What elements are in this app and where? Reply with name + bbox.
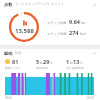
staticText: 深い睡眠時間: [66, 66, 85, 70]
staticText: ステップ消費: [47, 32, 67, 36]
staticText: 5: [36, 58, 40, 65]
staticText: 時: [70, 61, 73, 65]
staticText: 29: [43, 58, 50, 65]
staticText: 06:09: [87, 96, 94, 100]
staticText: 81: [12, 58, 19, 65]
button[interactable]: 折りたたむ: [91, 50, 97, 56]
staticText: 1: [66, 58, 70, 65]
staticText: 睡眠スコア: [5, 66, 21, 70]
staticText: もっとステップアップしましょう: [15, 2, 64, 6]
staticText: kcal: [80, 32, 86, 36]
staticText: 昨夜: [15, 51, 22, 55]
button[interactable]: 睡眠: [0, 49, 100, 100]
staticText: 歩数: [4, 2, 13, 7]
staticText: 00:40: [5, 96, 12, 100]
staticText: 9.64: [69, 18, 80, 25]
staticText: 睡眠: [4, 51, 13, 56]
staticText: 分: [50, 61, 53, 65]
staticText: km: [81, 21, 86, 25]
staticText: 13: [73, 58, 80, 65]
button[interactable]: 歩数: [0, 0, 100, 45]
staticText: 睡眠時間: [36, 66, 48, 70]
staticText: ステップ距離: [47, 21, 67, 25]
staticText: 分: [80, 61, 83, 65]
staticText: 時: [40, 61, 43, 65]
staticText: 13,588: [15, 27, 34, 35]
staticText: 274: [69, 29, 79, 36]
button[interactable]: 折りたたむ: [91, 1, 97, 7]
